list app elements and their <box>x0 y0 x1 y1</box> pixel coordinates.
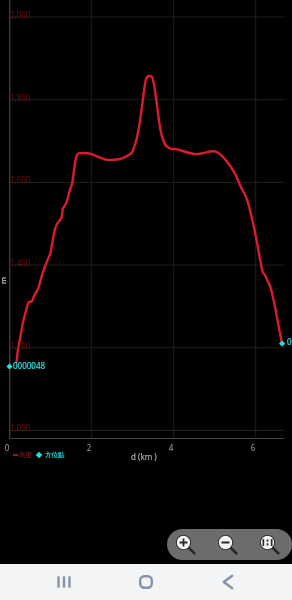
button[interactable]: Back <box>206 564 250 600</box>
staticText: 方位點 <box>45 451 65 459</box>
staticText: m <box>0 276 8 284</box>
staticText: 高度 <box>19 451 32 459</box>
button[interactable]: Zoom to fit <box>257 532 282 557</box>
staticText: d (km ) <box>131 451 157 462</box>
staticText: 1,200 <box>10 340 31 351</box>
button[interactable]: Home <box>124 564 168 600</box>
button[interactable]: Recents <box>42 564 86 600</box>
staticText: 1,400 <box>10 257 31 268</box>
staticText: 2,000 <box>10 9 31 20</box>
staticText: 1,000 <box>10 422 31 433</box>
staticText: 6 <box>243 442 263 453</box>
staticText: 2 <box>79 442 99 453</box>
staticText: 00 <box>287 336 292 347</box>
staticText: 0000048 <box>13 360 46 371</box>
button[interactable]: Zoom out <box>215 532 240 557</box>
staticText: 1,800 <box>10 92 31 103</box>
staticText: 4 <box>161 442 181 453</box>
button[interactable]: Zoom in <box>173 532 198 557</box>
staticText: 0 <box>0 442 17 453</box>
staticText: 1,600 <box>10 174 31 185</box>
